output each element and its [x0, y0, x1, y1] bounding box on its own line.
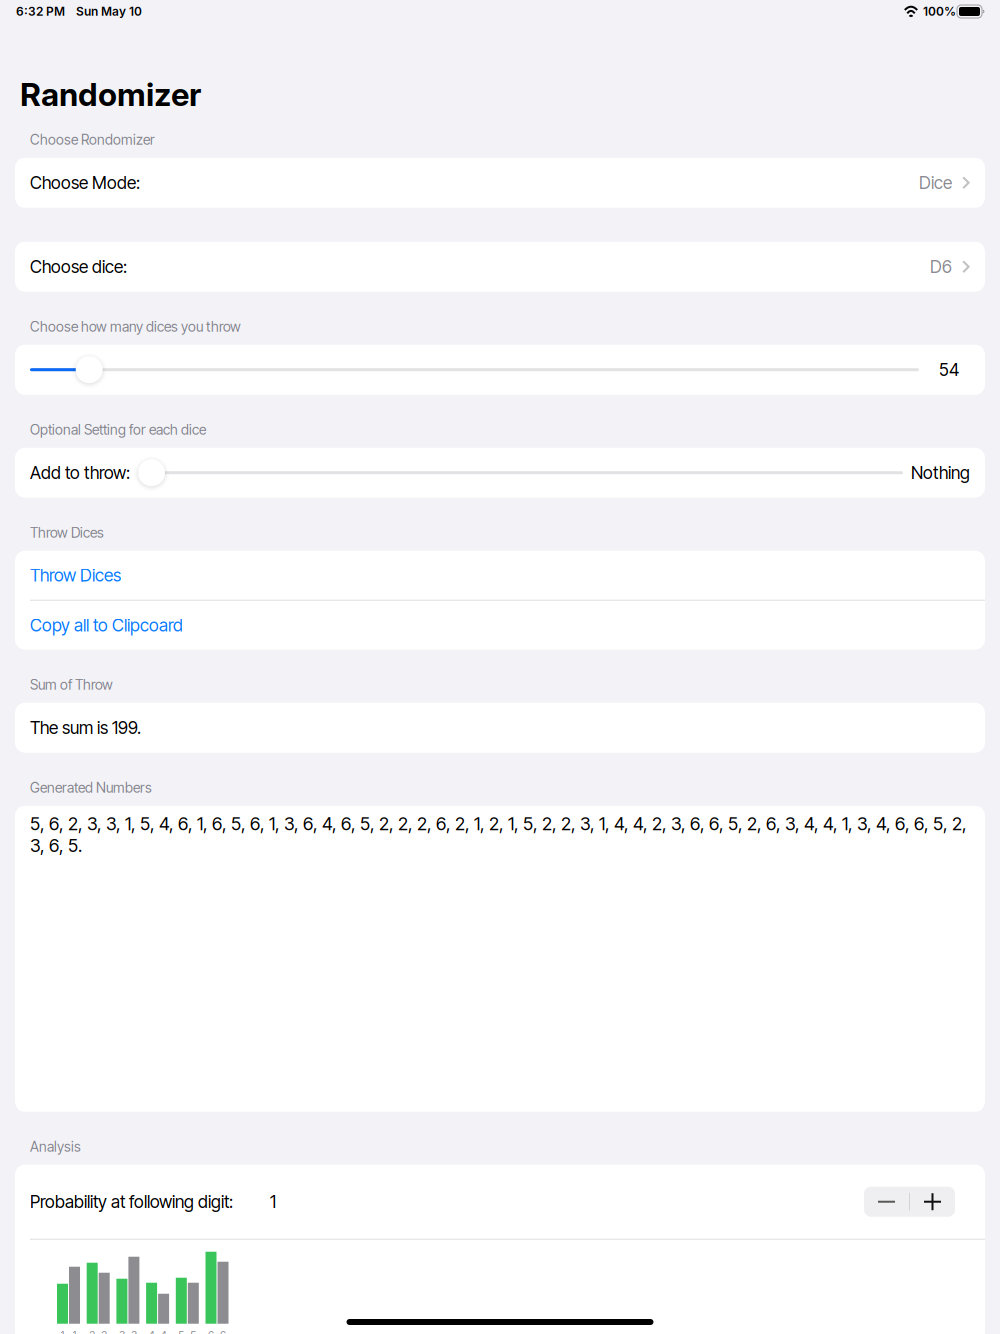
button[interactable]: Copy all to Clipcoard: [15, 601, 985, 650]
staticText: 6: [208, 1329, 214, 1334]
staticText: Randomizer: [20, 75, 201, 114]
staticText: 4: [161, 1329, 167, 1334]
staticText: 100%: [923, 4, 956, 19]
staticText: 6:32 PM: [16, 4, 65, 19]
staticText: Optional Setting for each dice: [30, 421, 206, 438]
staticText: 1: [270, 1191, 276, 1212]
staticText: 5: [178, 1329, 184, 1334]
staticText: Generated Numbers: [30, 779, 152, 796]
staticText: Throw Dices: [30, 524, 104, 541]
staticText: 5, 6, 2, 3, 3, 1, 5, 4, 6, 1, 6, 5, 6, 1…: [30, 813, 967, 856]
staticText: 3: [131, 1329, 137, 1334]
staticText: 5: [190, 1329, 196, 1334]
staticText: 4: [149, 1329, 155, 1334]
button[interactable]: Choose Mode:: [15, 158, 985, 208]
staticText: Sum of Throw: [30, 676, 113, 693]
staticText: Throw Dices: [30, 565, 121, 586]
button[interactable]: Throw Dices: [15, 551, 985, 600]
staticText: Dice: [919, 172, 952, 193]
staticText: Copy all to Clipcoard: [30, 615, 183, 636]
staticText: 6: [220, 1329, 226, 1334]
staticText: Choose dice:: [30, 256, 127, 277]
staticText: Nothing: [911, 462, 970, 483]
staticText: Choose how many dices you throw: [30, 318, 241, 335]
staticText: Analysis: [30, 1138, 81, 1155]
staticText: 1: [72, 1329, 76, 1334]
staticText: Sun May 10: [76, 4, 142, 19]
staticText: Add to throw:: [30, 462, 130, 483]
staticText: Probability at following digit:: [30, 1191, 233, 1212]
button[interactable]: Increase: [910, 1187, 955, 1217]
staticText: 2: [89, 1329, 95, 1334]
staticText: D6: [930, 256, 952, 277]
button[interactable]: Choose dice:: [15, 242, 985, 292]
staticText: 2: [101, 1329, 107, 1334]
button[interactable]: Decrease: [864, 1187, 909, 1217]
staticText: Choose Rondomizer: [30, 131, 155, 148]
staticText: 54: [939, 359, 959, 380]
staticText: 3: [119, 1329, 125, 1334]
staticText: 1: [60, 1329, 64, 1334]
staticText: Choose Mode:: [30, 172, 140, 193]
staticText: The sum is 199.: [30, 717, 141, 738]
